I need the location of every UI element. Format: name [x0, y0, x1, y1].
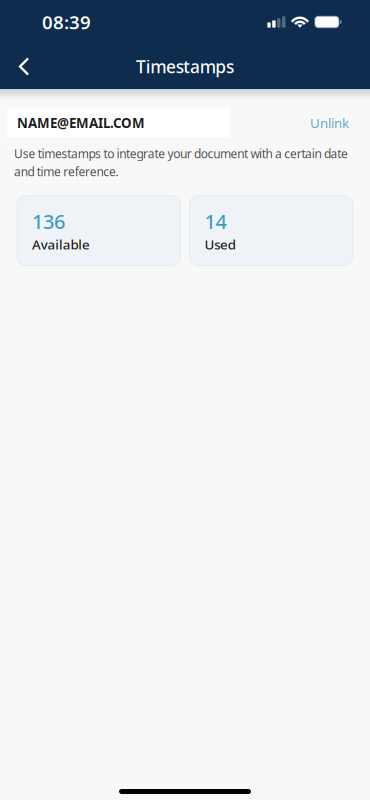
staticText: 136 [32, 208, 65, 234]
staticText: Unlink [310, 114, 349, 132]
staticText: Used [204, 235, 236, 253]
staticText: NAME@EMAIL.COM [17, 114, 145, 132]
staticText: 14 [204, 208, 226, 234]
button[interactable]: Unlink [310, 108, 349, 138]
staticText: Timestamps [136, 55, 234, 78]
button[interactable]: Back [0, 44, 48, 89]
staticText: Available [32, 235, 90, 253]
staticText: 08:39 [42, 10, 91, 34]
staticText: Use timestamps to integrate your documen… [14, 146, 348, 180]
